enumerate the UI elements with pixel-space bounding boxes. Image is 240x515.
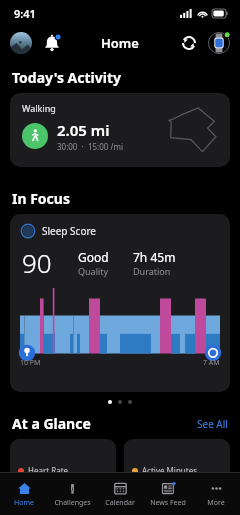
button[interactable]: See All (197, 417, 228, 431)
button[interactable]: Notifications (42, 33, 62, 53)
button[interactable]: Heart Rate (10, 439, 116, 479)
staticText: Sleep Score (42, 224, 97, 238)
staticText: See All (197, 417, 228, 431)
staticText: 30:00 · 15:00 /mi (57, 141, 123, 152)
staticText: Good (78, 249, 109, 265)
staticText: News Feed (150, 498, 186, 508)
staticText: Challenges (54, 498, 91, 508)
button[interactable]: Sleep Score (10, 214, 230, 392)
staticText: Walking (22, 102, 56, 114)
button[interactable]: Sync (179, 33, 199, 53)
staticText: Home (101, 34, 139, 52)
staticText: More (207, 498, 225, 508)
staticText: Home (14, 498, 34, 508)
staticText: 7h 45m (133, 249, 176, 265)
staticText: Today's Activity (12, 68, 122, 87)
staticText: 7 AM (203, 358, 220, 368)
staticText: 9:41 (14, 6, 36, 21)
staticText: 90 (22, 245, 52, 280)
staticText: Quality (78, 265, 109, 277)
staticText: At a Glance (12, 414, 91, 433)
button[interactable]: Challenges (48, 473, 96, 515)
button[interactable]: Watch (207, 31, 231, 55)
button[interactable]: Profile (10, 32, 32, 54)
button[interactable]: Active Minutes (124, 439, 230, 479)
staticText: Active Minutes (142, 465, 197, 476)
staticText: In Focus (12, 189, 70, 208)
button[interactable]: Walking (10, 93, 230, 167)
staticText: 10 PM (20, 358, 41, 368)
staticText: Calendar (105, 498, 135, 508)
button[interactable]: Home (0, 473, 48, 515)
button[interactable]: More (192, 473, 240, 515)
button[interactable]: Calendar (96, 473, 144, 515)
staticText: Heart Rate (28, 465, 69, 476)
button[interactable]: News Feed (144, 473, 192, 515)
staticText: 2.05 mi (57, 120, 110, 140)
staticText: Duration (133, 265, 171, 277)
